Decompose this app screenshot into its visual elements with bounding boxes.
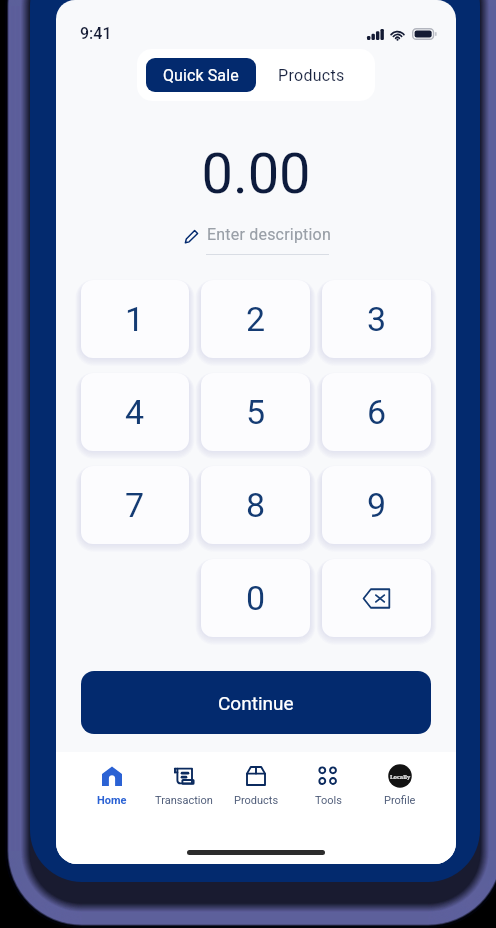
staticText: Tools [315,794,342,807]
staticText: Continue [218,692,294,714]
staticText: 0.00 [56,141,456,207]
button[interactable]: Transaction [148,764,220,807]
button[interactable]: Backspace [322,559,431,637]
staticText: Products [234,794,279,807]
button[interactable]: 7 [81,466,189,544]
other: Backspace [363,588,391,609]
button[interactable]: 9 [322,466,431,544]
staticText: Transaction [155,794,213,807]
staticText: 4 [125,392,145,432]
button[interactable]: Tools [292,764,364,807]
button[interactable]: Quick Sale [146,58,256,92]
staticText: 3 [367,299,387,339]
staticText: Quick Sale [163,66,239,85]
button[interactable]: 2 [201,280,310,358]
button[interactable]: 0 [201,559,310,637]
staticText: 1 [125,299,145,339]
button[interactable]: Continue [81,671,431,734]
staticText: 6 [367,392,387,432]
staticText: Locally [390,773,411,780]
button[interactable]: 4 [81,373,189,451]
button[interactable]: Home [76,764,148,807]
button[interactable]: Locally [364,764,436,807]
staticText: 9 [367,485,387,525]
button[interactable]: 6 [322,373,431,451]
button[interactable]: 8 [201,466,310,544]
staticText: 8 [246,485,266,525]
staticText: 5 [246,392,266,432]
staticText: 2 [246,299,266,339]
staticText: Home [97,794,127,807]
staticText: 0 [246,578,266,618]
button[interactable]: 1 [81,280,189,358]
button[interactable]: 3 [322,280,431,358]
staticText: 7 [125,485,145,525]
staticText: Products [278,66,345,85]
button[interactable]: 5 [201,373,310,451]
staticText: Profile [384,794,416,807]
staticText: 9:41 [80,24,112,43]
button[interactable]: Products [220,764,292,807]
staticText: Enter description [207,225,331,244]
button[interactable]: Products [256,58,366,92]
